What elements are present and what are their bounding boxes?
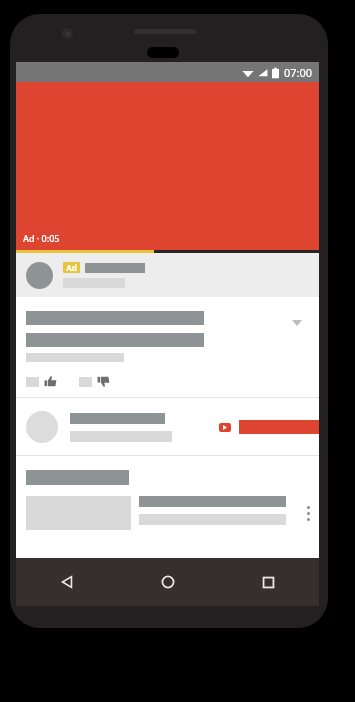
button[interactable]: Dislike — [79, 375, 110, 388]
button[interactable] — [26, 398, 319, 456]
button[interactable]: More options — [297, 496, 319, 530]
staticText: 07:00 — [284, 65, 313, 80]
button[interactable]: Like — [26, 375, 57, 388]
button[interactable]: Home — [117, 558, 218, 606]
staticText: Ad — [66, 262, 77, 273]
button[interactable]: Subscribe — [219, 420, 319, 434]
button[interactable]: More options — [26, 496, 319, 530]
button[interactable]: Recent apps — [218, 558, 319, 606]
staticText: Ad · 0:05 — [23, 232, 60, 244]
button[interactable]: Video player — [16, 82, 319, 253]
button[interactable]: Expand description — [289, 315, 305, 331]
button[interactable]: Ad — [26, 253, 309, 297]
button[interactable]: Back — [16, 558, 117, 606]
